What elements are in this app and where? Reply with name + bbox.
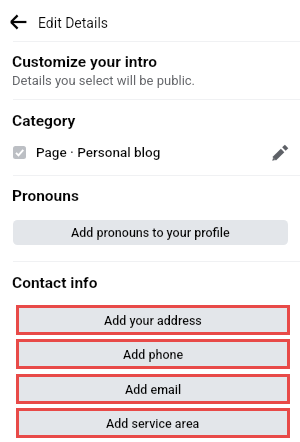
staticText: Customize your intro <box>12 53 157 71</box>
staticText: Add email <box>125 382 182 397</box>
button[interactable]: Add your address <box>19 308 287 332</box>
staticText: Add your address <box>104 313 202 328</box>
button[interactable]: Add phone <box>19 342 287 366</box>
staticText: Contact info <box>12 274 98 292</box>
button[interactable]: Page · Personal blog <box>0 141 300 162</box>
staticText: Category <box>12 112 76 130</box>
staticText: Details you select will be public. <box>12 73 196 88</box>
staticText: Add service area <box>106 416 200 431</box>
staticText: Pronouns <box>12 187 79 205</box>
button[interactable]: Add service area <box>19 411 287 435</box>
button[interactable]: Add email <box>19 377 287 401</box>
button[interactable]: Add pronouns to your profile <box>13 220 288 245</box>
button[interactable]: Back <box>7 10 29 32</box>
staticText: Add phone <box>123 347 184 362</box>
staticText: Edit Details <box>38 15 109 31</box>
button[interactable]: Edit category <box>271 143 289 161</box>
staticText: Add pronouns to your profile <box>71 225 230 240</box>
staticText: Page · Personal blog <box>36 144 161 160</box>
